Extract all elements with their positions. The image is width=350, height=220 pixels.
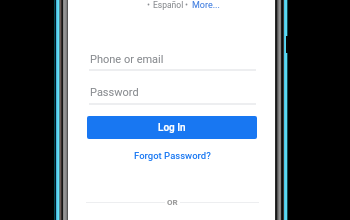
- staticText: More...: [192, 0, 220, 11]
- staticText: Log In: [158, 122, 186, 134]
- button[interactable]: Forgot Password?: [134, 150, 211, 161]
- staticText: Forgot Password?: [134, 150, 211, 161]
- button[interactable]: More...: [192, 0, 220, 11]
- staticText: Password: [90, 86, 139, 99]
- staticText: Español: [153, 0, 184, 10]
- button[interactable]: Phone or email: [90, 48, 257, 70]
- button[interactable]: Password: [90, 81, 257, 103]
- button[interactable]: Español: [153, 0, 184, 10]
- staticText: OR: [167, 198, 178, 207]
- button[interactable]: Log In: [87, 116, 257, 139]
- staticText: Phone or email: [90, 53, 164, 66]
